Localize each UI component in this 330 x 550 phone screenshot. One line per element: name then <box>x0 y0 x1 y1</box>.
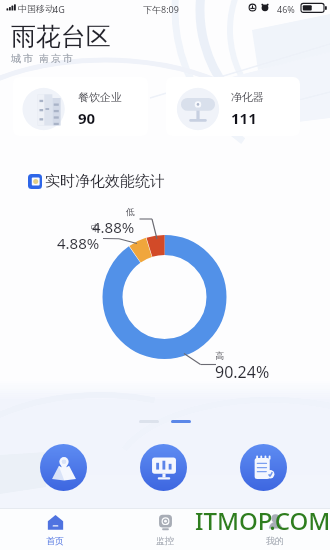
staticText: 高 <box>215 350 224 361</box>
staticText: ITMOP.COM <box>195 504 330 537</box>
staticText: 我的 <box>266 535 284 546</box>
staticText: 城市 南京市 <box>11 51 75 65</box>
button[interactable]: 报告 <box>240 444 287 491</box>
button[interactable]: 净化器 <box>166 77 300 136</box>
staticText: 雨花台区 <box>11 21 111 52</box>
button[interactable]: 监控 <box>140 444 187 491</box>
staticText: 90 <box>78 108 96 128</box>
staticText: 监控 <box>156 535 174 546</box>
staticText: 餐饮企业 <box>78 90 122 104</box>
staticText: 4.88% <box>57 233 100 253</box>
button[interactable]: 监控 <box>110 509 220 550</box>
staticText: 46% <box>277 3 295 15</box>
staticText: 4G <box>53 3 65 15</box>
staticText: 下午8:09 <box>143 3 179 15</box>
button[interactable]: 首页 <box>0 509 110 550</box>
button[interactable]: 餐饮企业 <box>13 77 148 136</box>
staticText: 低 <box>126 206 135 217</box>
staticText: 首页 <box>46 535 64 546</box>
staticText: 中 <box>91 222 100 233</box>
staticText: 4.88% <box>92 217 135 237</box>
staticText: 净化器 <box>231 90 264 104</box>
staticText: 实时净化效能统计 <box>45 172 165 191</box>
button[interactable]: 我的 <box>220 509 330 550</box>
button[interactable]: 地图 <box>40 444 87 491</box>
staticText: 111 <box>231 108 257 128</box>
staticText: 中国移动 <box>18 3 54 14</box>
staticText: 90.24% <box>215 361 270 383</box>
